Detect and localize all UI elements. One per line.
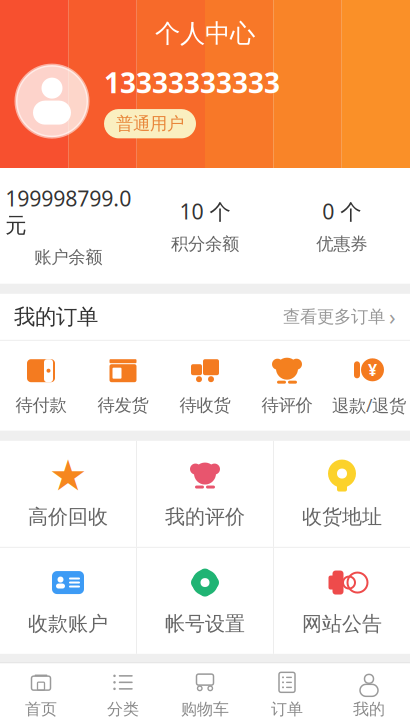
button[interactable]: 收款账户	[0, 548, 136, 654]
staticText: 账户余额	[34, 246, 102, 268]
button[interactable]: 帐号设置	[137, 548, 273, 654]
staticText: 13333333333	[104, 64, 280, 101]
button[interactable]: 待评价	[246, 356, 328, 416]
staticText: 优惠券	[316, 233, 367, 255]
staticText: 10 个	[179, 197, 230, 225]
staticText: ›	[389, 303, 396, 331]
staticText: 订单	[271, 699, 303, 719]
button[interactable]: 待收货	[164, 356, 246, 416]
staticText: 收货地址	[302, 505, 382, 529]
button[interactable]: 我的	[328, 670, 410, 719]
staticText: 我的订单	[14, 304, 98, 330]
button[interactable]: 收货地址	[274, 441, 410, 547]
staticText: 高价回收	[28, 505, 108, 529]
button[interactable]: 待付款	[0, 356, 82, 416]
staticText: 退款/退货	[332, 394, 406, 417]
staticText: ★	[49, 451, 87, 500]
staticText: 待收货	[179, 395, 230, 416]
button[interactable]: ★	[0, 441, 136, 547]
button[interactable]: 10 个	[137, 197, 273, 255]
staticText: 我的	[353, 699, 385, 719]
staticText: 购物车	[181, 699, 229, 719]
button[interactable]: 网站公告	[274, 548, 410, 654]
button[interactable]: ¥	[328, 355, 410, 417]
button[interactable]: 查看更多订单	[283, 303, 396, 331]
button[interactable]: 0 个	[273, 197, 410, 255]
button[interactable]: 待发货	[82, 356, 164, 416]
button[interactable]: 首页	[0, 670, 82, 719]
staticText: 我的评价	[165, 505, 245, 529]
staticText: 帐号设置	[165, 612, 245, 636]
staticText: 待评价	[261, 395, 312, 416]
staticText: 待付款	[15, 395, 66, 416]
staticText: 普通用户	[116, 113, 184, 134]
staticText: 待发货	[97, 395, 148, 416]
staticText: 收款账户	[28, 612, 108, 636]
staticText: 网站公告	[302, 612, 382, 636]
staticText: 首页	[25, 699, 57, 719]
button[interactable]: 我的评价	[137, 441, 273, 547]
staticText: 个人中心	[155, 18, 255, 49]
staticText: 0 个	[322, 197, 361, 225]
staticText: 积分余额	[171, 233, 239, 255]
button[interactable]: 购物车	[164, 670, 246, 719]
staticText: 分类	[107, 699, 139, 719]
button[interactable]: 199998799.0 元	[0, 184, 137, 268]
button[interactable]: 订单	[246, 670, 328, 719]
staticText: 199998799.0 元	[5, 184, 131, 238]
button[interactable]: 分类	[82, 670, 164, 719]
staticText: 查看更多订单	[283, 306, 385, 327]
staticText: ¥	[368, 359, 377, 380]
